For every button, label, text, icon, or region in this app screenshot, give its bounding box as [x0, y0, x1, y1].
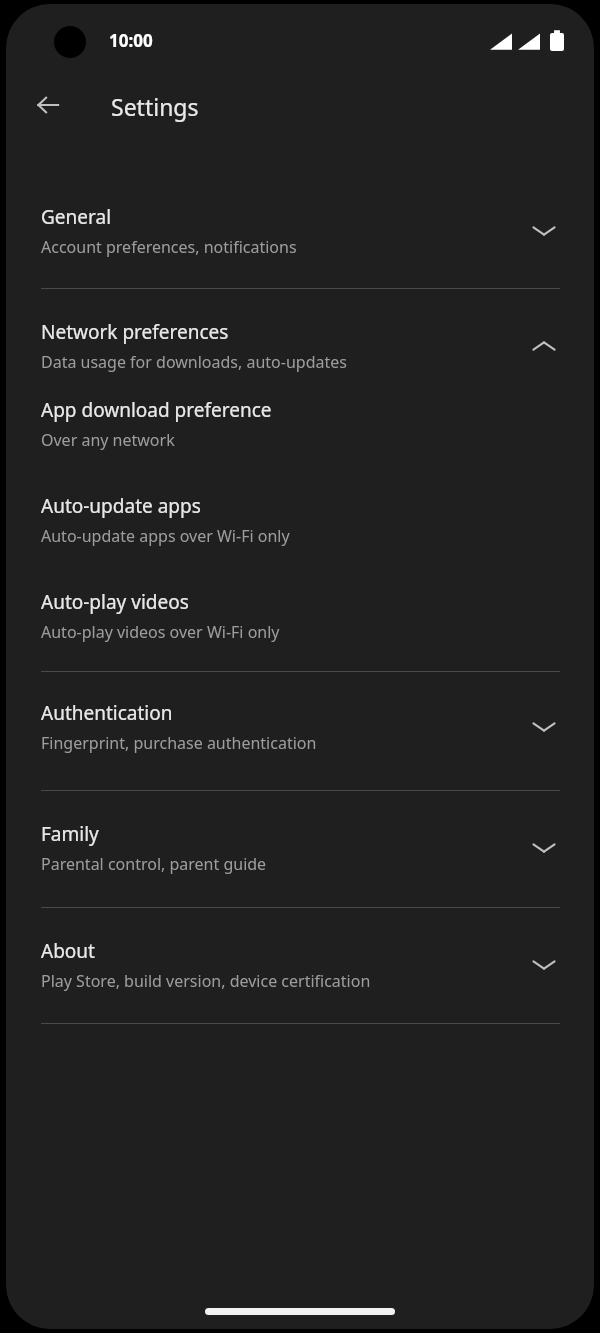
staticText: Network preferences	[41, 319, 229, 345]
button[interactable]: Expand Authentication	[520, 703, 568, 751]
staticText: Settings	[111, 91, 199, 122]
button[interactable]: Expand Family	[520, 824, 568, 872]
staticText: Parental control, parent guide	[41, 853, 267, 875]
staticText: Auto-update apps over Wi-Fi only	[41, 525, 290, 547]
staticText: Auto-play videos	[41, 589, 189, 615]
staticText: Auto-update apps	[41, 493, 201, 519]
staticText: Play Store, build version, device certif…	[41, 970, 371, 992]
staticText: About	[41, 938, 95, 964]
staticText: Data usage for downloads, auto-updates	[41, 351, 347, 373]
staticText: Account preferences, notifications	[41, 236, 297, 258]
staticText: Fingerprint, purchase authentication	[41, 732, 317, 754]
button[interactable]: Network preferences	[6, 309, 594, 383]
staticText: Auto-play videos over Wi-Fi only	[41, 621, 280, 643]
staticText: Authentication	[41, 700, 173, 726]
staticText: General	[41, 204, 112, 230]
button[interactable]: Auto-play videos	[6, 579, 594, 653]
button[interactable]: About	[6, 928, 594, 1002]
button[interactable]: General	[6, 194, 594, 268]
button[interactable]: Family	[6, 811, 594, 885]
button[interactable]: Expand About	[520, 941, 568, 989]
staticText: Family	[41, 821, 99, 847]
staticText: Over any network	[41, 429, 175, 451]
button[interactable]: App download preference	[6, 387, 594, 461]
button[interactable]: Expand General	[520, 207, 568, 255]
button[interactable]: Authentication	[6, 690, 594, 764]
button[interactable]: Back	[26, 83, 70, 127]
button[interactable]: Auto-update apps	[6, 483, 594, 557]
staticText: 10:00	[109, 29, 153, 52]
staticText: App download preference	[41, 397, 272, 423]
button[interactable]: Collapse Network preferences	[520, 322, 568, 370]
